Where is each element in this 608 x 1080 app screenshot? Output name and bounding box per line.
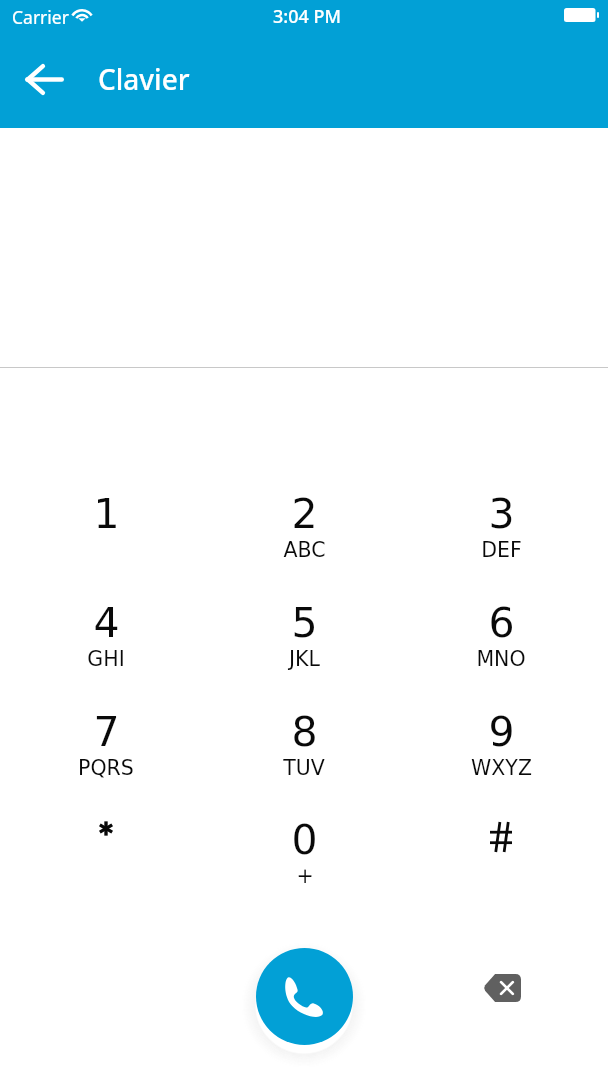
- staticText: TUV: [283, 756, 325, 780]
- staticText: PQRS: [78, 756, 134, 780]
- button[interactable]: 3: [426, 490, 576, 590]
- button[interactable]: 0: [229, 816, 379, 916]
- button[interactable]: Delete: [462, 948, 542, 1028]
- staticText: 8: [291, 708, 318, 756]
- staticText: DEF: [481, 538, 522, 562]
- button[interactable]: 5: [229, 599, 379, 699]
- button[interactable]: 1: [31, 490, 181, 590]
- button[interactable]: Call: [256, 948, 353, 1045]
- button[interactable]: Back: [12, 53, 76, 105]
- staticText: 7: [93, 708, 120, 756]
- staticText: WXYZ: [471, 756, 532, 780]
- staticText: GHI: [87, 647, 125, 671]
- button[interactable]: [426, 816, 576, 916]
- staticText: 3:04 PM: [273, 4, 341, 29]
- button[interactable]: 2: [229, 490, 379, 590]
- staticText: Clavier: [98, 60, 190, 98]
- staticText: Carrier: [12, 5, 69, 29]
- staticText: 5: [291, 599, 318, 647]
- staticText: ABC: [283, 538, 326, 562]
- button[interactable]: 9: [426, 708, 576, 808]
- staticText: 0: [291, 816, 318, 864]
- staticText: +: [296, 864, 314, 888]
- staticText: 2: [291, 490, 318, 538]
- staticText: 3: [488, 490, 515, 538]
- button[interactable]: [31, 816, 181, 916]
- staticText: 9: [488, 708, 515, 756]
- staticText: MNO: [476, 647, 526, 671]
- button[interactable]: 7: [31, 708, 181, 808]
- staticText: JKL: [289, 647, 320, 671]
- staticText: 6: [488, 599, 515, 647]
- staticText: 4: [93, 599, 120, 647]
- button[interactable]: 6: [426, 599, 576, 699]
- staticText: 1: [93, 490, 120, 538]
- button[interactable]: 4: [31, 599, 181, 699]
- button[interactable]: 8: [229, 708, 379, 808]
